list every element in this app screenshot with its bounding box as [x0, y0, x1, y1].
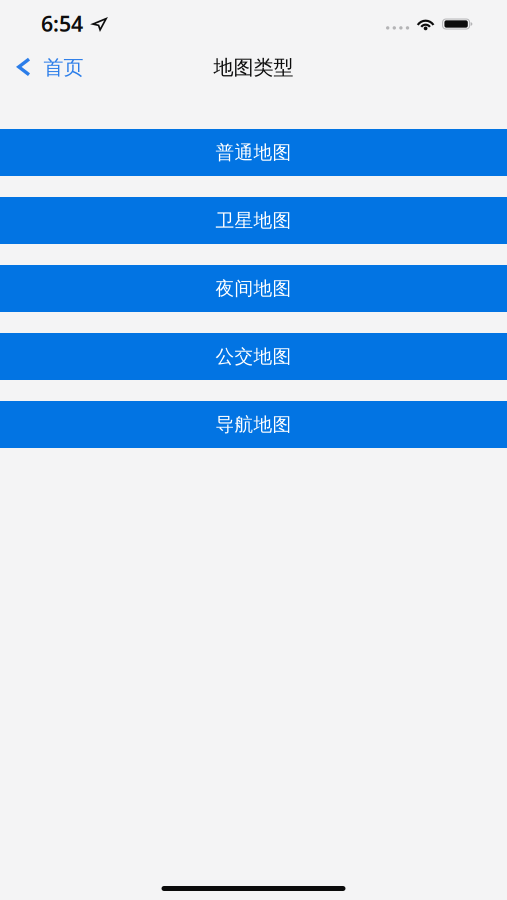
staticText: 6:54 [41, 9, 83, 38]
staticText: 夜间地图 [215, 277, 291, 300]
staticText: 公交地图 [215, 345, 291, 368]
staticText: 卫星地图 [215, 209, 291, 232]
staticText: 普通地图 [215, 141, 291, 164]
button[interactable]: 公交地图 [0, 333, 507, 380]
button[interactable]: 普通地图 [0, 129, 507, 176]
staticText: 地图类型 [213, 55, 293, 80]
staticText: 导航地图 [215, 413, 291, 436]
button[interactable]: 返回首页 [0, 44, 95, 88]
button[interactable]: 导航地图 [0, 401, 507, 448]
staticText: 首页 [43, 55, 83, 80]
button[interactable]: 卫星地图 [0, 197, 507, 244]
button[interactable]: 夜间地图 [0, 265, 507, 312]
